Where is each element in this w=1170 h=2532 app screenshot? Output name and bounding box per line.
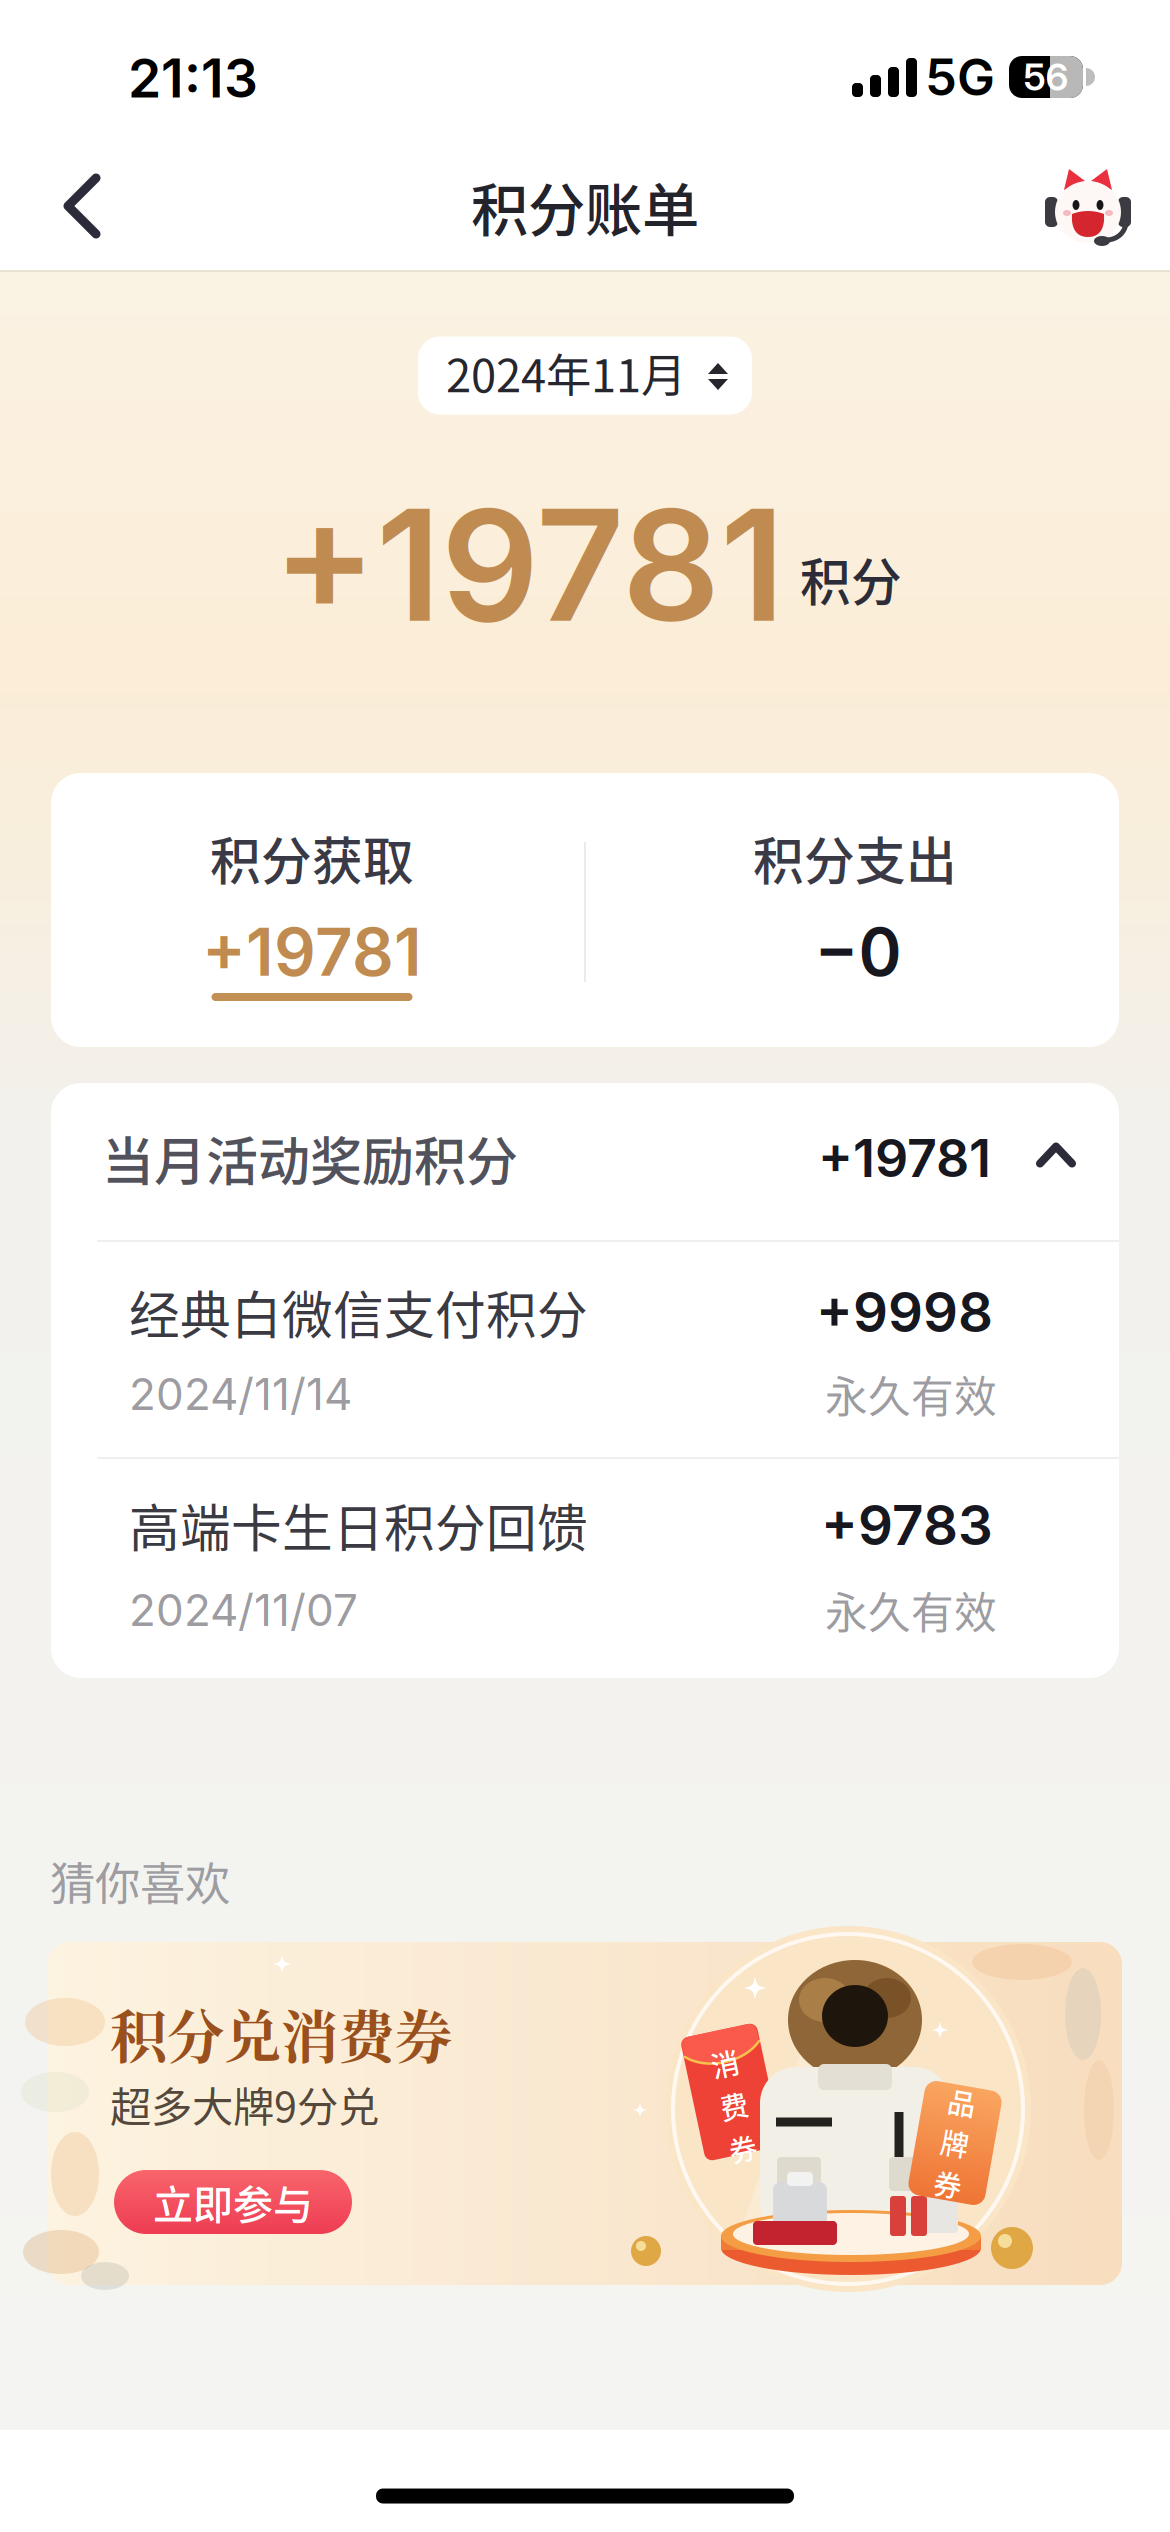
staticText: 积分 <box>800 542 902 616</box>
button[interactable]: 经典白微信支付积分 <box>97 1242 1119 1458</box>
staticText: 积分兑消费券 <box>110 1992 452 2074</box>
staticText: 超多大牌9分兑 <box>110 2074 379 2134</box>
staticText: 永久有效 <box>825 1579 997 1641</box>
staticText: 2024/11/07 <box>129 1583 358 1637</box>
button[interactable]: 立即参与 <box>114 2170 352 2234</box>
staticText: 当月活动奖励积分 <box>102 1120 518 1196</box>
button[interactable]: 当月活动奖励积分 <box>97 1098 1119 1218</box>
staticText: 券 <box>717 2129 745 2170</box>
staticText: 牌 <box>941 2123 969 2163</box>
staticText: 费 <box>717 2086 745 2126</box>
staticText: −0 <box>814 912 901 991</box>
staticText: 券 <box>941 2164 969 2205</box>
button[interactable]: 积分获取 <box>85 795 545 1035</box>
staticText: 高端卡生日积分回馈 <box>129 1488 588 1562</box>
staticText: +19781 <box>818 1126 991 1189</box>
staticText: +9998 <box>816 1279 993 1345</box>
staticText: +19781 <box>202 912 422 991</box>
staticText: 积分获取 <box>210 821 414 895</box>
staticText: 消 <box>717 2042 745 2083</box>
staticText: 积分账单 <box>471 164 699 247</box>
staticText: 2024年11月 <box>446 340 686 405</box>
staticText: 经典白微信支付积分 <box>129 1275 588 1349</box>
staticText: 5G <box>925 46 995 108</box>
button[interactable]: 高端卡生日积分回馈 <box>97 1459 1119 1675</box>
staticText: 永久有效 <box>825 1363 997 1425</box>
button[interactable]: Back <box>37 162 125 250</box>
button[interactable]: 2024年11月 <box>418 336 752 414</box>
staticText: 品 <box>941 2081 969 2122</box>
staticText: +19781 <box>273 472 785 658</box>
staticText: 积分支出 <box>753 821 957 895</box>
button[interactable]: 在线客服 <box>1042 160 1134 252</box>
staticText: +9783 <box>821 1492 993 1558</box>
button[interactable]: 消 <box>47 1942 1122 2285</box>
staticText: 2024/11/14 <box>129 1367 352 1421</box>
button[interactable]: 积分支出 <box>622 795 1082 1035</box>
staticText: 56 <box>1023 54 1068 100</box>
staticText: 立即参与 <box>153 2173 313 2231</box>
staticText: 21:13 <box>128 46 258 110</box>
staticText: 猜你喜欢 <box>50 1848 230 1914</box>
